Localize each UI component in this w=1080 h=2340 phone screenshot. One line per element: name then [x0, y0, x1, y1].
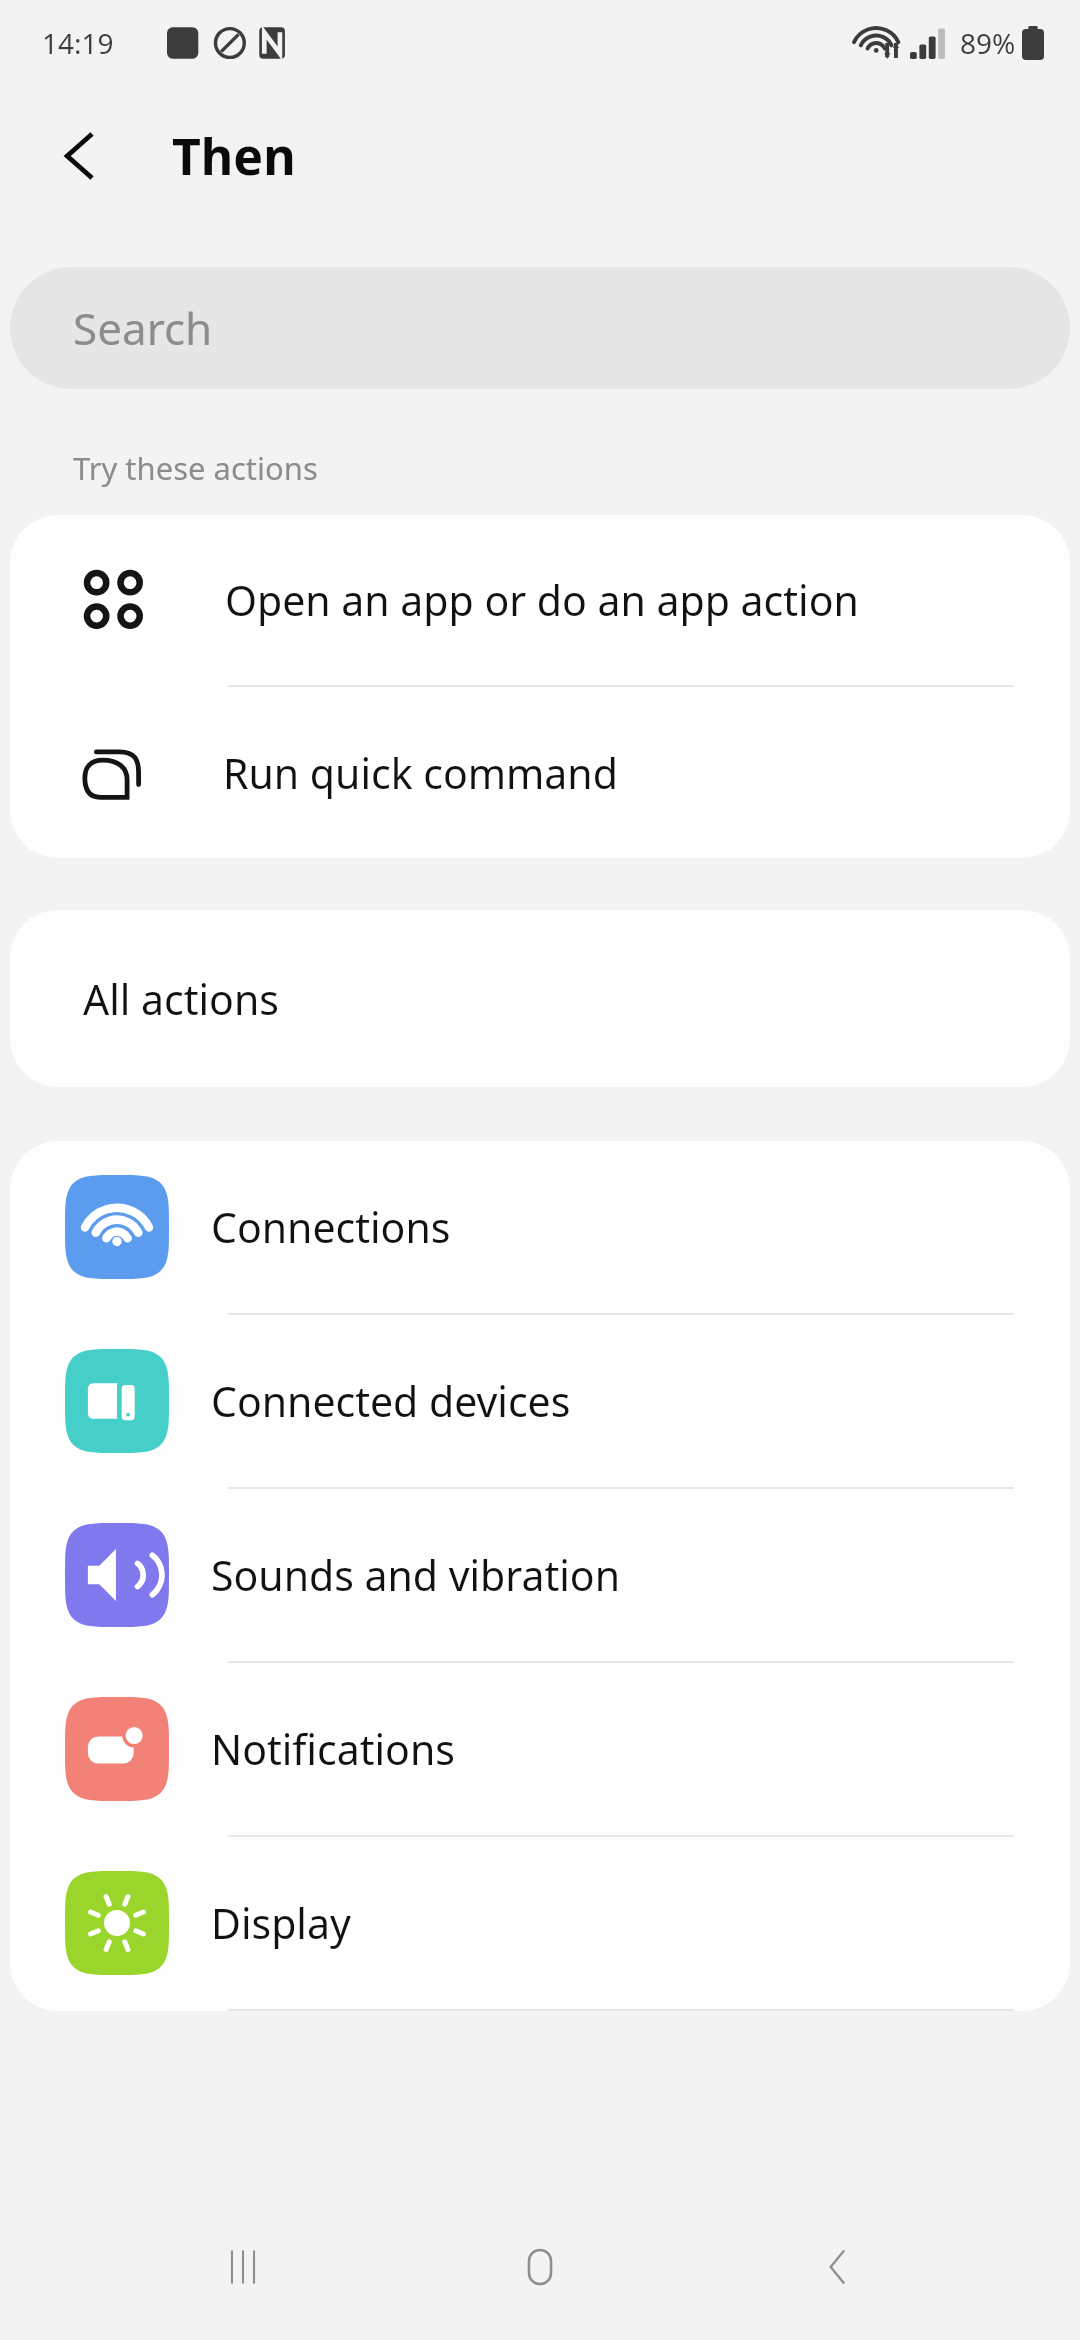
staticText: Connected devices: [211, 1373, 571, 1429]
button[interactable]: Search: [10, 267, 1070, 389]
staticText: 89%: [960, 24, 1016, 62]
button[interactable]: Open an app or do an app action: [10, 515, 1070, 685]
staticText: Open an app or do an app action: [225, 572, 859, 628]
button[interactable]: All actions: [10, 910, 1070, 1087]
button[interactable]: Connections: [10, 1141, 1070, 1313]
staticText: Then: [172, 122, 296, 190]
button[interactable]: Back: [783, 2212, 893, 2322]
staticText: All actions: [83, 971, 279, 1027]
button[interactable]: Recents: [188, 2212, 298, 2322]
staticText: Sounds and vibration: [211, 1547, 620, 1603]
staticText: Run quick command: [223, 745, 618, 801]
staticText: Search: [73, 298, 213, 358]
button[interactable]: Sounds and vibration: [10, 1489, 1070, 1661]
button[interactable]: Run quick command: [10, 687, 1070, 858]
staticText: Display: [211, 1895, 351, 1951]
button[interactable]: Back: [48, 124, 112, 188]
button[interactable]: Notifications: [10, 1663, 1070, 1835]
staticText: Notifications: [211, 1721, 455, 1777]
staticText: 14:19: [42, 24, 114, 62]
staticText: Try these actions: [73, 447, 318, 489]
staticText: Connections: [211, 1199, 451, 1255]
button[interactable]: Home: [485, 2212, 595, 2322]
button[interactable]: Display: [10, 1837, 1070, 2009]
button[interactable]: Connected devices: [10, 1315, 1070, 1487]
